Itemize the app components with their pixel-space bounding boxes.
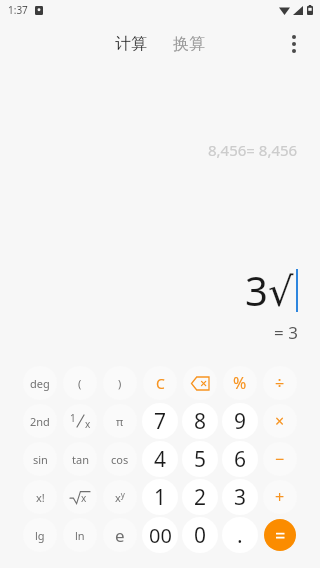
button[interactable]: × bbox=[262, 403, 298, 439]
staticText: 6 bbox=[234, 445, 247, 474]
button[interactable]: ln bbox=[62, 517, 98, 553]
staticText: x! bbox=[36, 490, 45, 505]
staticText: 8 bbox=[194, 407, 207, 436]
staticText: 2nd bbox=[30, 414, 50, 429]
staticText: x bbox=[85, 417, 91, 431]
staticText: cos bbox=[111, 452, 129, 467]
staticText: 7 bbox=[154, 407, 167, 436]
staticText: deg bbox=[30, 376, 50, 391]
button[interactable]: 2 bbox=[182, 479, 218, 515]
button[interactable]: 00 bbox=[142, 517, 178, 553]
button[interactable]: x! bbox=[22, 479, 58, 515]
button[interactable]: 1 bbox=[142, 479, 178, 515]
button[interactable]: tan bbox=[62, 441, 98, 477]
staticText: x bbox=[81, 491, 87, 505]
staticText: ln bbox=[75, 528, 85, 543]
button[interactable]: − bbox=[262, 441, 298, 477]
button[interactable]: 换算 bbox=[167, 30, 211, 58]
staticText: e bbox=[115, 524, 125, 547]
button[interactable]: 5 bbox=[182, 441, 218, 477]
staticText: × bbox=[275, 410, 285, 432]
staticText: + bbox=[275, 486, 285, 508]
staticText: 计算 bbox=[115, 34, 147, 54]
button[interactable]: √x bbox=[62, 479, 98, 515]
staticText: lg bbox=[35, 528, 45, 543]
staticText: xy bbox=[115, 489, 125, 505]
staticText: sin bbox=[33, 452, 48, 467]
staticText: tan bbox=[72, 452, 89, 467]
button[interactable]: 计算 bbox=[109, 30, 153, 58]
button[interactable]: deg bbox=[22, 365, 58, 401]
staticText: π bbox=[116, 414, 124, 429]
staticText: 3√ bbox=[245, 263, 294, 317]
staticText: 1 bbox=[70, 411, 76, 425]
staticText: C bbox=[156, 374, 165, 393]
button[interactable]: 0 bbox=[182, 517, 218, 553]
staticText: ( bbox=[78, 376, 82, 391]
staticText: 9 bbox=[234, 407, 247, 436]
staticText: − bbox=[275, 448, 285, 470]
button[interactable]: % bbox=[222, 365, 258, 401]
staticText: ) bbox=[118, 376, 122, 391]
button[interactable]: Backspace bbox=[182, 365, 218, 401]
staticText: 00 bbox=[149, 522, 172, 549]
staticText: . bbox=[237, 521, 243, 550]
button[interactable]: ÷ bbox=[262, 365, 298, 401]
button[interactable]: π bbox=[102, 403, 138, 439]
button[interactable]: 8,456= 8,456 bbox=[208, 140, 298, 160]
button[interactable]: 6 bbox=[222, 441, 258, 477]
staticText: 4 bbox=[154, 445, 167, 474]
button[interactable]: 8 bbox=[182, 403, 218, 439]
button[interactable]: ( bbox=[62, 365, 98, 401]
staticText: 0 bbox=[194, 521, 207, 550]
staticText: 1 bbox=[154, 483, 167, 512]
staticText: ÷ bbox=[275, 372, 285, 394]
button[interactable]: More options bbox=[274, 24, 314, 64]
button[interactable]: 9 bbox=[222, 403, 258, 439]
staticText: = bbox=[275, 523, 286, 548]
button[interactable]: lg bbox=[22, 517, 58, 553]
button[interactable]: e bbox=[102, 517, 138, 553]
staticText: 换算 bbox=[173, 34, 205, 54]
staticText: 1:37 bbox=[8, 3, 28, 17]
button[interactable]: 1/x bbox=[62, 403, 98, 439]
button[interactable]: cos bbox=[102, 441, 138, 477]
staticText: 8,456= 8,456 bbox=[208, 140, 298, 160]
button[interactable]: 7 bbox=[142, 403, 178, 439]
staticText: % bbox=[233, 372, 247, 394]
button[interactable]: = bbox=[262, 517, 298, 553]
button[interactable]: C bbox=[142, 365, 178, 401]
staticText: 2 bbox=[194, 483, 207, 512]
button[interactable]: . bbox=[222, 517, 258, 553]
button[interactable]: x^y bbox=[102, 479, 138, 515]
button[interactable]: 4 bbox=[142, 441, 178, 477]
staticText: = 3 bbox=[274, 321, 298, 344]
button[interactable]: sin bbox=[22, 441, 58, 477]
button[interactable]: 3 bbox=[222, 479, 258, 515]
staticText: 5 bbox=[194, 445, 207, 474]
button[interactable]: + bbox=[262, 479, 298, 515]
staticText: 3 bbox=[234, 483, 247, 512]
button[interactable]: ) bbox=[102, 365, 138, 401]
button[interactable]: 2nd bbox=[22, 403, 58, 439]
